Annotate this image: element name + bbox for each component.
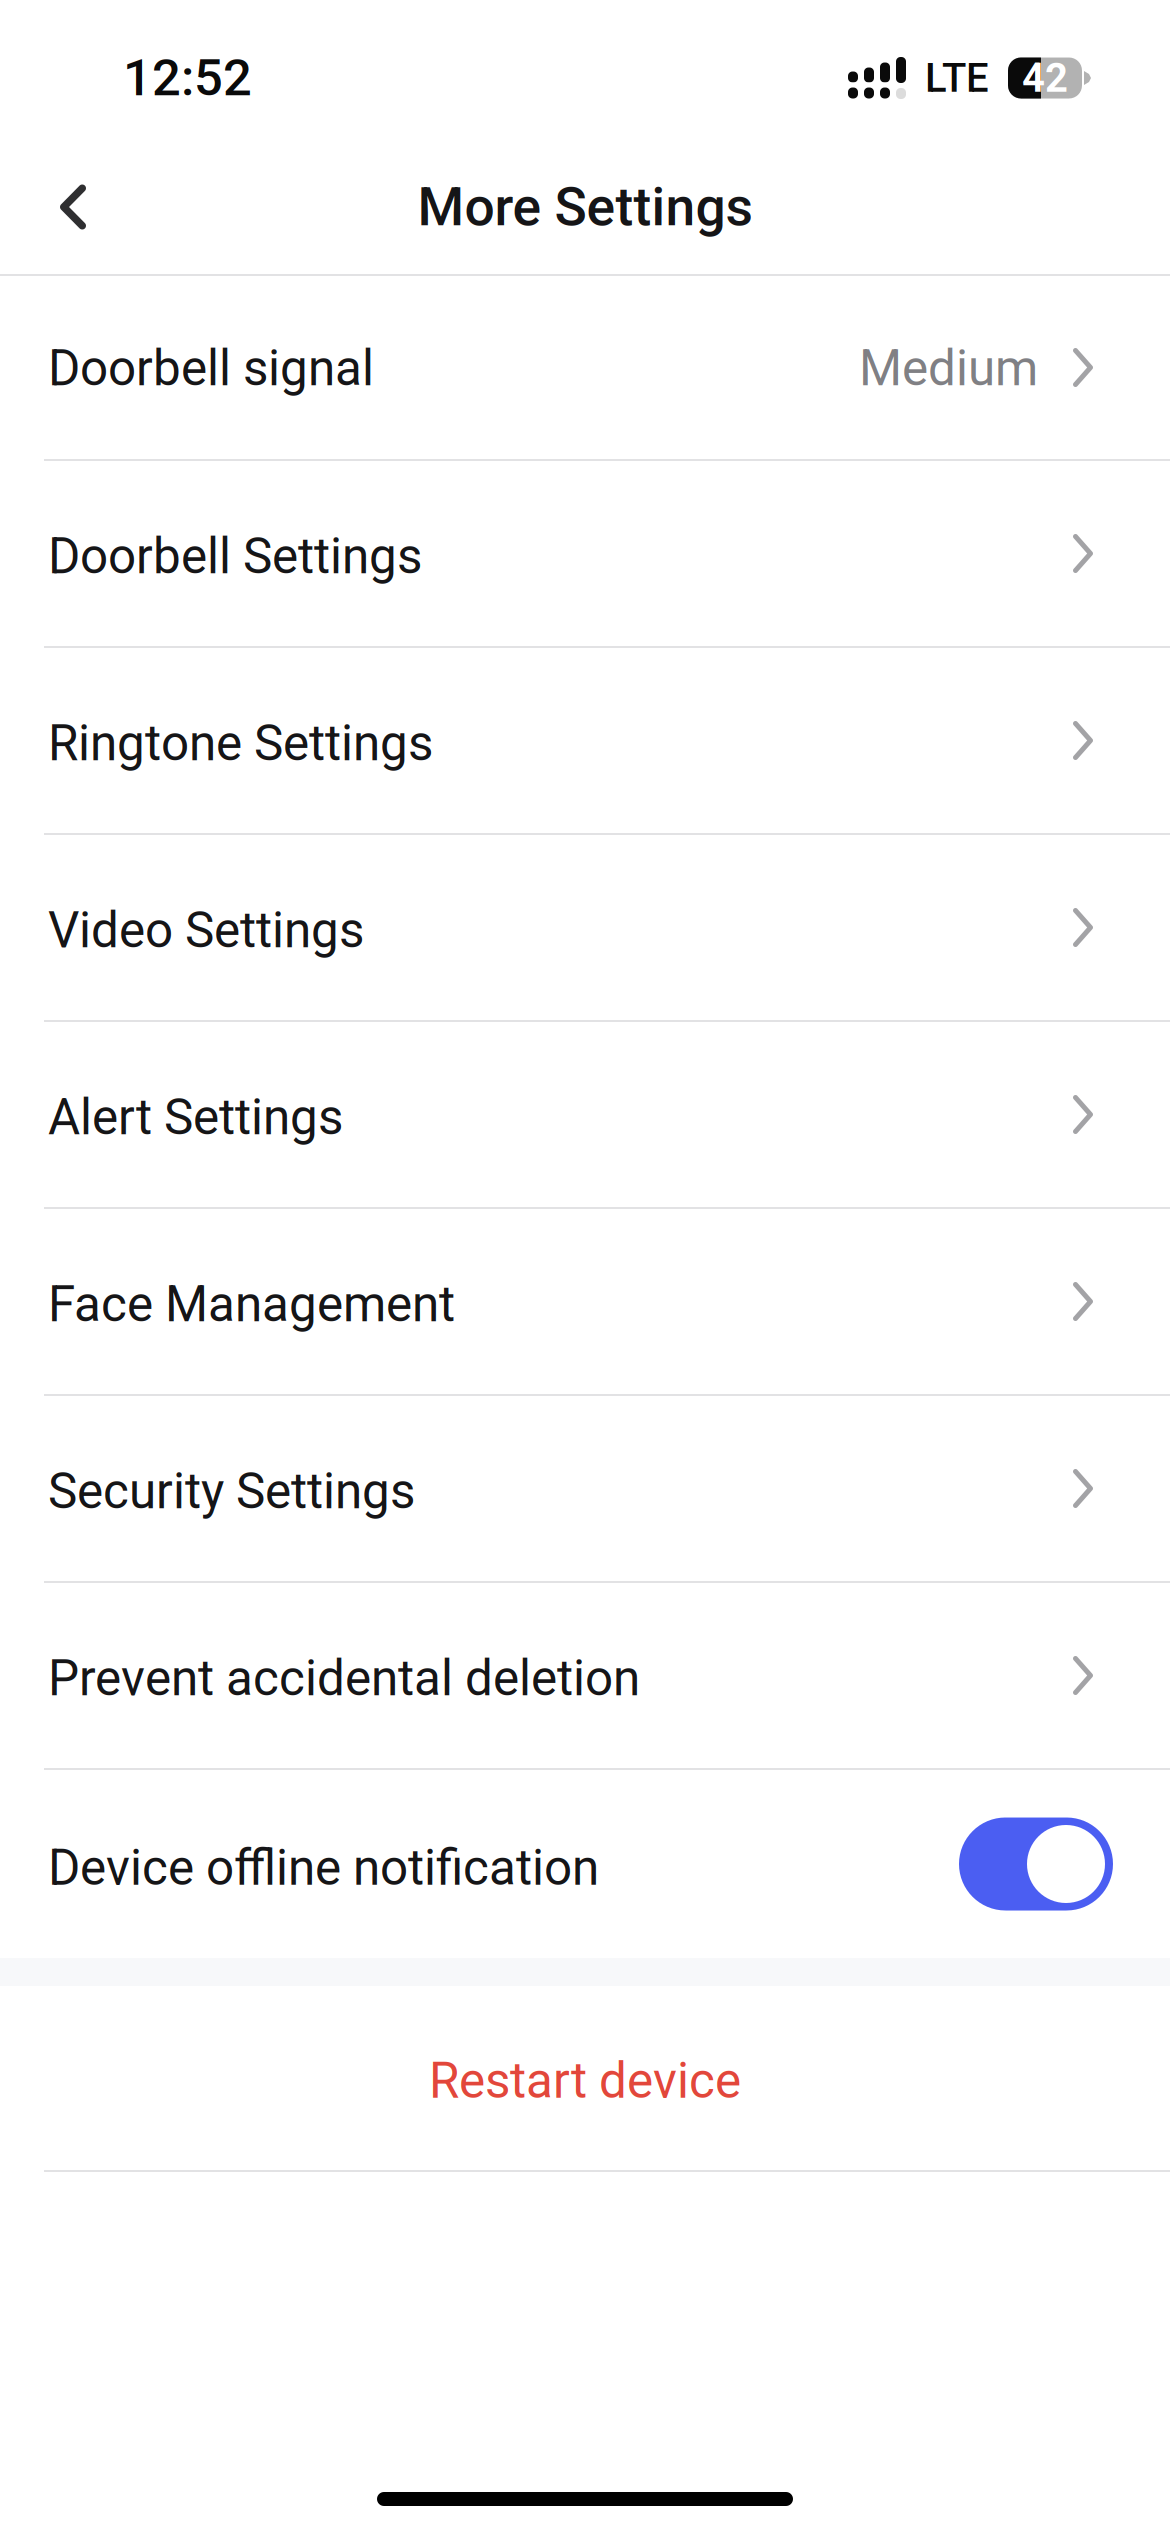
- staticText: Doorbell Settings: [48, 528, 422, 585]
- button[interactable]: Device offline notification, on: [0, 1770, 1170, 1958]
- button[interactable]: Security Settings: [0, 1396, 1170, 1581]
- staticText: Alert Settings: [48, 1089, 343, 1146]
- button[interactable]: Video Settings: [0, 835, 1170, 1020]
- staticText: Restart device: [429, 2052, 741, 2110]
- staticText: Medium: [859, 340, 1038, 397]
- staticText: 42: [1022, 55, 1068, 101]
- staticText: Prevent accidental deletion: [48, 1650, 640, 1707]
- staticText: Ringtone Settings: [48, 715, 433, 772]
- staticText: LTE: [925, 55, 989, 101]
- staticText: Doorbell signal: [48, 340, 374, 397]
- button[interactable]: Alert Settings: [0, 1022, 1170, 1207]
- button[interactable]: Back: [0, 140, 146, 274]
- button[interactable]: Face Management: [0, 1209, 1170, 1394]
- staticText: More Settings: [417, 176, 752, 238]
- staticText: Video Settings: [48, 902, 364, 959]
- staticText: Security Settings: [48, 1463, 415, 1520]
- button[interactable]: Ringtone Settings: [0, 648, 1170, 833]
- button[interactable]: Restart device: [0, 1986, 1170, 2170]
- staticText: 12:52: [123, 48, 252, 108]
- button[interactable]: Doorbell signal: [0, 276, 1170, 459]
- button[interactable]: Doorbell Settings: [0, 461, 1170, 646]
- staticText: Device offline notification: [48, 1839, 599, 1897]
- staticText: Face Management: [48, 1276, 455, 1333]
- button[interactable]: Prevent accidental deletion: [0, 1583, 1170, 1768]
